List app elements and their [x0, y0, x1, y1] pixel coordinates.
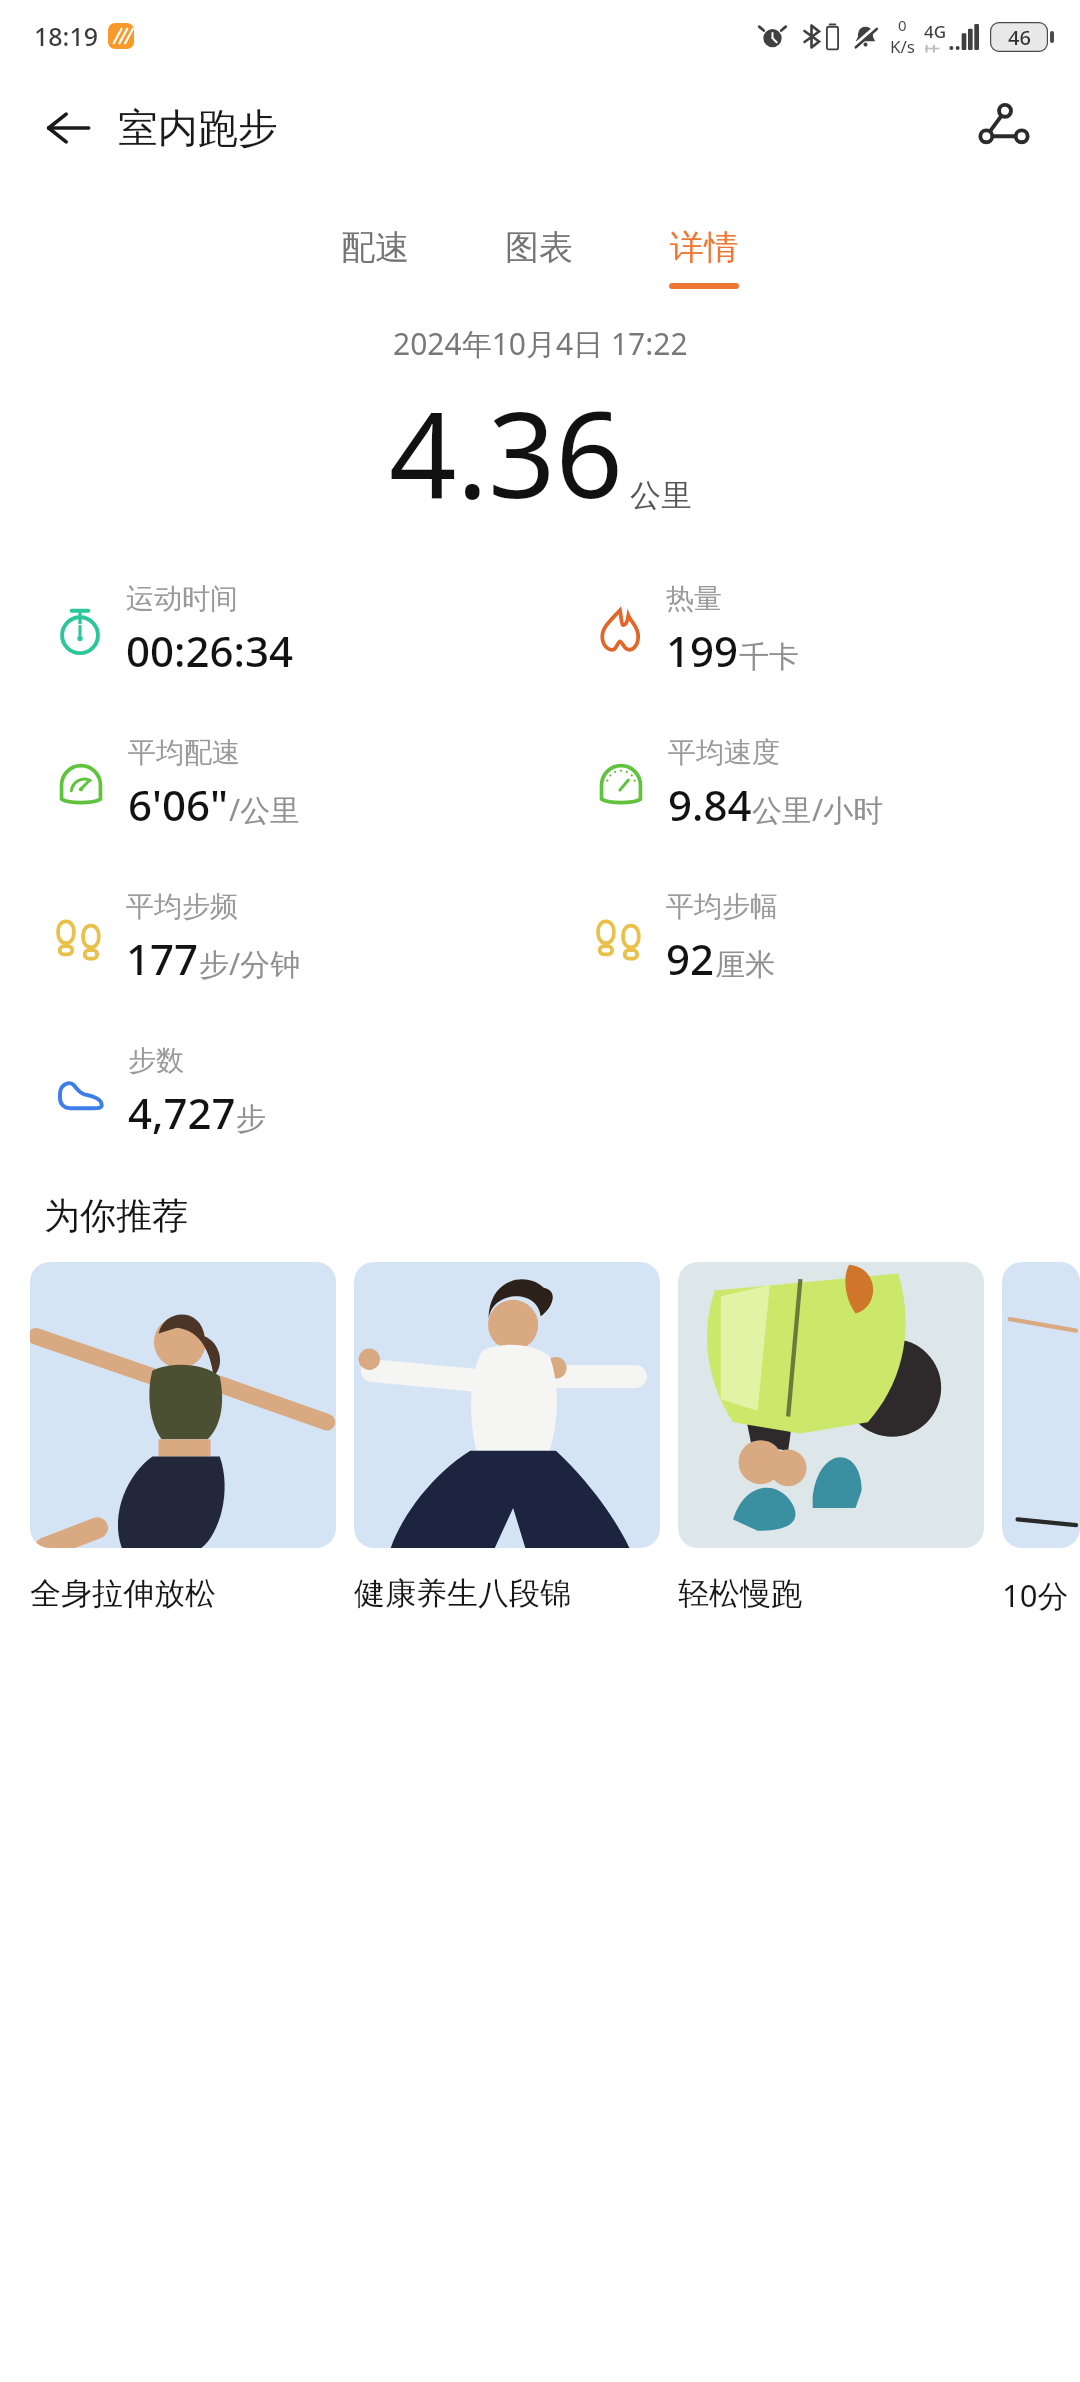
staticText: 轻松慢跑: [678, 1574, 802, 1613]
staticText: 10分: [1002, 1574, 1069, 1616]
staticText: 46: [1008, 24, 1031, 51]
staticText: 00:26:34: [126, 622, 293, 679]
staticText: 平均步幅: [666, 889, 778, 924]
button[interactable]: 健康养生八段锦: [354, 1262, 660, 1613]
staticText: 4G: [924, 20, 947, 43]
button[interactable]: 平均步幅: [540, 889, 1080, 987]
staticText: 平均配速: [128, 735, 240, 770]
staticText: 步数: [128, 1043, 184, 1078]
staticText: 2024年10月4日 17:22: [393, 323, 688, 364]
button[interactable]: Share: [962, 86, 1046, 170]
staticText: 千卡: [739, 638, 799, 676]
staticText: K/s: [890, 35, 915, 58]
staticText: 运动时间: [126, 581, 238, 616]
staticText: 4.36: [389, 372, 624, 533]
button[interactable]: 运动时间: [0, 581, 540, 679]
staticText: 配速: [341, 226, 409, 269]
staticText: 6'06": [128, 776, 229, 833]
button[interactable]: 步数: [0, 1043, 540, 1141]
staticText: 公里: [630, 476, 692, 515]
button[interactable]: 10分: [1002, 1262, 1080, 1616]
staticText: 全身拉伸放松: [30, 1574, 216, 1613]
staticText: 热量: [666, 581, 722, 616]
staticText: 平均速度: [668, 735, 780, 770]
staticText: 为你推荐: [44, 1193, 188, 1238]
staticText: 0: [898, 15, 907, 35]
staticText: 92: [666, 930, 715, 987]
button[interactable]: 平均配速: [0, 735, 540, 833]
staticText: 步/分钟: [199, 943, 301, 984]
staticText: 9.84: [668, 776, 752, 833]
button[interactable]: 轻松慢跑: [678, 1262, 984, 1613]
staticText: 4,727: [128, 1084, 236, 1141]
staticText: 厘米: [715, 946, 775, 984]
staticText: 177: [126, 930, 199, 987]
button[interactable]: 图表: [491, 222, 587, 293]
button[interactable]: 平均步频: [0, 889, 540, 987]
button[interactable]: 配速: [327, 222, 423, 293]
button[interactable]: 详情: [655, 222, 753, 293]
staticText: /公里: [229, 789, 301, 830]
staticText: 图表: [505, 226, 573, 269]
staticText: 健康养生八段锦: [354, 1574, 571, 1613]
button[interactable]: 平均速度: [540, 735, 1080, 833]
staticText: 18:19: [34, 19, 99, 53]
button[interactable]: Back: [30, 90, 106, 166]
staticText: 平均步频: [126, 889, 238, 924]
button[interactable]: 全身拉伸放松: [30, 1262, 336, 1613]
staticText: 详情: [670, 226, 738, 269]
staticText: 199: [666, 622, 739, 679]
button[interactable]: 热量: [540, 581, 1080, 679]
staticText: 步: [236, 1100, 266, 1138]
staticText: 公里/小时: [752, 789, 884, 830]
staticText: 室内跑步: [118, 103, 278, 153]
